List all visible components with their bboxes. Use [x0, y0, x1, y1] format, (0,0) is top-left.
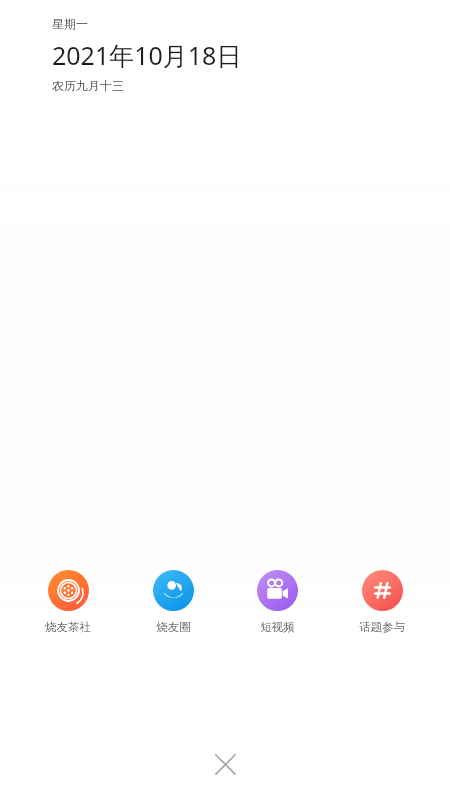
staticText: 短视频 — [260, 620, 295, 634]
button[interactable]: 话题参与 — [348, 570, 416, 634]
button[interactable]: 烧友茶社 — [34, 570, 102, 634]
button[interactable]: 短视频 — [243, 570, 311, 634]
staticText: 星期一 — [52, 16, 88, 31]
button[interactable]: Close — [203, 742, 247, 786]
staticText: 烧友圈 — [156, 620, 191, 634]
staticText: 2021年10月18日 — [52, 38, 242, 72]
staticText: 农历九月十三 — [52, 78, 124, 93]
staticText: 话题参与 — [359, 620, 405, 634]
staticText: 烧友茶社 — [45, 620, 91, 634]
button[interactable]: 烧友圈 — [139, 570, 207, 634]
